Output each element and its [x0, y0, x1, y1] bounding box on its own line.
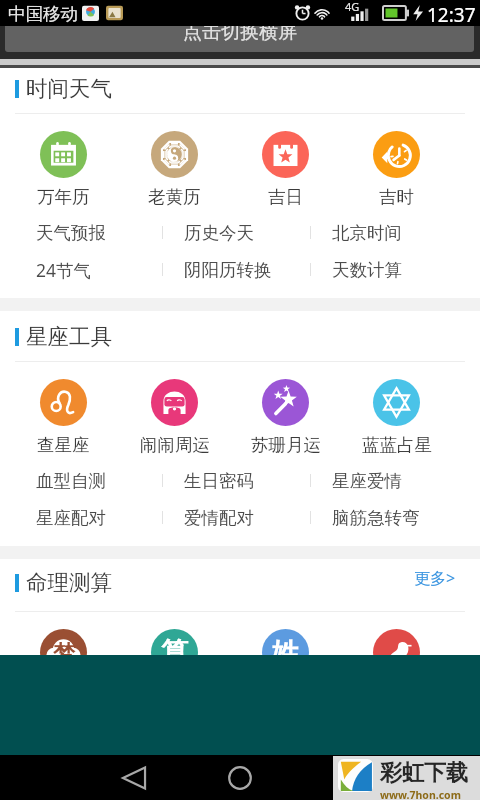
staticText: 万年历 — [37, 186, 90, 208]
button[interactable]: Back — [110, 755, 158, 800]
button[interactable]: 姓 — [230, 629, 341, 684]
staticText: 生日密码 — [184, 470, 254, 492]
button[interactable]: 生日密码 — [162, 462, 310, 499]
button[interactable]: 蓝蓝占星 — [341, 379, 452, 456]
staticText: 苏珊月运 — [251, 434, 321, 456]
button[interactable]: 算 — [119, 629, 230, 684]
staticText: 彩虹下载 — [380, 759, 468, 787]
button[interactable]: 脑筋急转弯 — [310, 499, 458, 536]
staticText: 星座工具 — [26, 323, 112, 350]
staticText: 4G — [345, 0, 360, 14]
staticText: 12:37 — [427, 2, 476, 28]
staticText: 闹闹周运 — [140, 434, 210, 456]
staticText: 蓝蓝占星 — [362, 434, 432, 456]
staticText: 24节气 — [36, 258, 92, 282]
staticText: 北京时间 — [332, 222, 402, 244]
staticText: 更多> — [414, 567, 456, 589]
button[interactable]: 星座爱情 — [310, 462, 458, 499]
staticText: 命理测算 — [26, 569, 112, 596]
button[interactable]: 24节气 — [14, 251, 162, 288]
staticText: 脑筋急转弯 — [332, 507, 420, 529]
button[interactable] — [341, 629, 452, 684]
staticText: www.7hon.com — [380, 788, 461, 800]
button[interactable]: 万年历 — [8, 131, 119, 208]
button[interactable]: 吉日 — [230, 131, 341, 208]
button[interactable]: 天数计算 — [310, 251, 458, 288]
staticText: 星座配对 — [36, 507, 106, 529]
button[interactable]: 北京时间 — [310, 214, 458, 251]
button[interactable]: 历史今天 — [162, 214, 310, 251]
button[interactable]: 闹闹周运 — [119, 379, 230, 456]
staticText: 天气预报 — [36, 222, 106, 244]
staticText: 历史今天 — [184, 222, 254, 244]
button[interactable]: Home — [216, 755, 264, 800]
staticText: 中国移动 — [8, 3, 78, 25]
button[interactable]: 血型自测 — [14, 462, 162, 499]
button[interactable]: 爱情配对 — [162, 499, 310, 536]
staticText: 星座爱情 — [332, 470, 402, 492]
staticText: 老黄历 — [148, 186, 201, 208]
staticText: 梦 — [53, 640, 75, 668]
button[interactable]: 天气预报 — [14, 214, 162, 251]
staticText: 吉日 — [268, 186, 303, 208]
staticText: 点击切换横屏 — [183, 20, 297, 44]
staticText: 阴阳历转换 — [184, 259, 272, 281]
button[interactable]: 梦 — [8, 629, 119, 684]
button[interactable]: 更多> — [396, 559, 480, 597]
button[interactable]: 老黄历 — [119, 131, 230, 208]
staticText: 血型自测 — [36, 470, 106, 492]
staticText: 姓 — [272, 636, 299, 670]
button[interactable]: 星座配对 — [14, 499, 162, 536]
staticText: 算 — [161, 636, 188, 670]
staticText: 天数计算 — [332, 259, 402, 281]
button[interactable]: 查星座 — [8, 379, 119, 456]
button[interactable]: 苏珊月运 — [230, 379, 341, 456]
staticText: 爱情配对 — [184, 507, 254, 529]
button[interactable]: 吉时 — [341, 131, 452, 208]
staticText: 时间天气 — [26, 75, 112, 102]
staticText: 查星座 — [37, 434, 90, 456]
button[interactable]: 阴阳历转换 — [162, 251, 310, 288]
staticText: 吉时 — [379, 186, 414, 208]
